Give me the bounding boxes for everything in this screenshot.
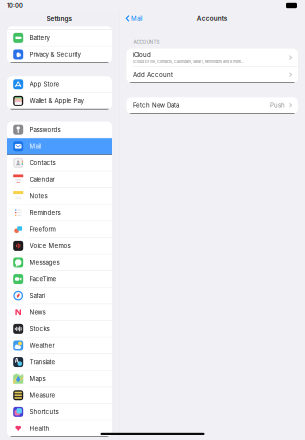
staticText: Health <box>30 425 50 432</box>
button[interactable]: Freeform <box>7 221 112 238</box>
button[interactable]: Mail <box>7 138 112 155</box>
staticText: Passwords <box>30 126 61 133</box>
staticText: Wallet & Apple Pay <box>30 97 84 104</box>
button[interactable]: Reminders <box>7 205 112 221</box>
staticText: Add Account <box>133 71 173 78</box>
staticText: FaceTime <box>30 275 57 283</box>
staticText: iCloud <box>133 51 151 58</box>
button[interactable]: Voice Memos <box>7 238 112 254</box>
staticText: Shortcuts <box>30 408 59 415</box>
staticText: ACCOUNTS <box>133 39 159 45</box>
staticText: Maps <box>30 375 46 382</box>
staticText: iCloud Drive, Contacts, Calendars, Safar… <box>133 59 244 64</box>
button[interactable]: News <box>7 304 112 321</box>
staticText: Settings <box>46 15 72 22</box>
staticText: Measure <box>30 391 56 399</box>
staticText: 10:00 <box>7 2 23 9</box>
button[interactable]: FaceTime <box>7 271 112 288</box>
button[interactable]: Health <box>7 420 112 437</box>
staticText: Mail <box>131 15 142 22</box>
staticText: News <box>30 308 46 316</box>
staticText: Accounts <box>197 15 228 22</box>
button[interactable]: Notes <box>7 188 112 205</box>
button[interactable]: Passwords <box>7 122 112 138</box>
button[interactable]: Messages <box>7 254 112 271</box>
staticText: Contacts <box>30 159 56 166</box>
staticText: Fetch New Data <box>133 101 179 109</box>
staticText: Reminders <box>30 209 61 216</box>
button[interactable]: Safari <box>7 288 112 304</box>
button[interactable]: Wallet & Apple Pay <box>7 93 112 109</box>
staticText: Voice Memos <box>30 242 71 249</box>
button[interactable]: Calendar <box>7 171 112 188</box>
staticText: App Store <box>30 80 60 88</box>
staticText: Push <box>270 101 285 109</box>
staticText: Messages <box>30 259 60 266</box>
staticText: A <box>14 357 18 364</box>
button[interactable]: iCloud <box>126 49 298 67</box>
staticText: Stocks <box>30 325 50 332</box>
button[interactable]: Weather <box>7 337 112 354</box>
staticText: Translate <box>30 358 56 366</box>
button[interactable]: Battery <box>7 30 112 46</box>
button[interactable]: App Store <box>7 76 112 93</box>
staticText: Battery <box>30 34 50 41</box>
button[interactable]: Add Account <box>126 67 298 83</box>
button[interactable]: Shortcuts <box>7 404 112 420</box>
staticText: Mail <box>30 142 41 150</box>
button[interactable]: Privacy & Security <box>7 46 112 63</box>
staticText: Calendar <box>30 176 55 183</box>
button[interactable]: Mail <box>119 11 142 26</box>
button[interactable]: Contacts <box>7 155 112 171</box>
staticText: Privacy & Security <box>30 51 81 58</box>
button[interactable]: Maps <box>7 371 112 387</box>
button[interactable]: Fetch New Data <box>126 97 298 114</box>
staticText: Safari <box>30 292 45 299</box>
button[interactable]: Measure <box>7 387 112 404</box>
staticText: Weather <box>30 342 55 349</box>
button[interactable]: Stocks <box>7 321 112 337</box>
staticText: Freeform <box>30 225 56 233</box>
button[interactable]: A <box>7 354 112 371</box>
staticText: Notes <box>30 192 48 200</box>
